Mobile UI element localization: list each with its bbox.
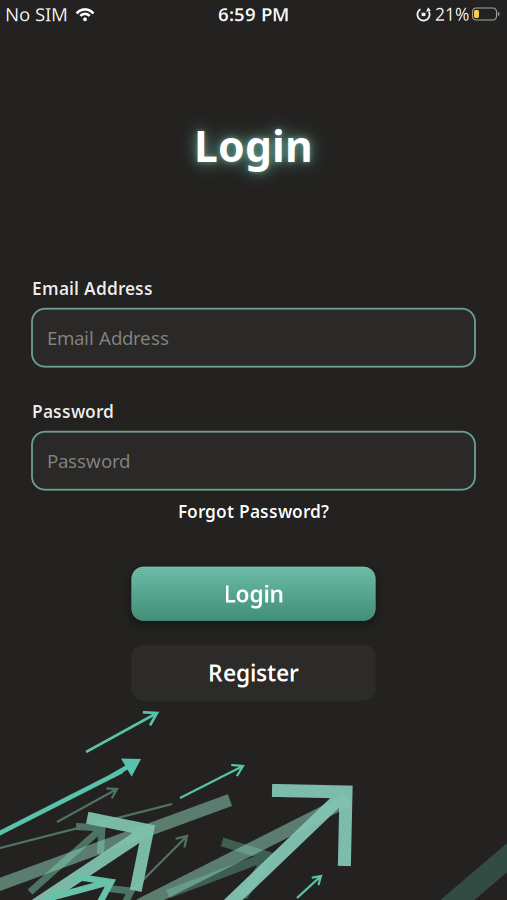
- staticText: Register: [208, 658, 299, 688]
- button[interactable]: Login: [131, 567, 375, 621]
- button[interactable]: Forgot Password?: [178, 500, 329, 523]
- button[interactable]: Register: [131, 645, 375, 701]
- staticText: Password: [47, 448, 130, 473]
- staticText: Login: [223, 579, 283, 609]
- staticText: No SIM: [5, 2, 68, 26]
- button[interactable]: Email Address: [32, 309, 475, 367]
- staticText: Email Address: [32, 277, 153, 300]
- staticText: Forgot Password?: [178, 500, 329, 523]
- staticText: Login: [194, 117, 313, 174]
- staticText: Email Address: [47, 325, 169, 350]
- staticText: 21%: [435, 2, 469, 25]
- staticText: Password: [32, 400, 114, 423]
- button[interactable]: Password: [32, 432, 475, 490]
- staticText: 6:59 PM: [218, 2, 289, 26]
